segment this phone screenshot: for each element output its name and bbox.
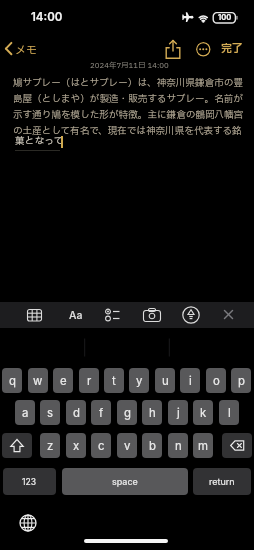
staticText: u [162, 374, 169, 388]
staticText: i [189, 374, 192, 388]
staticText: メモ [15, 42, 37, 59]
button[interactable]: e [53, 368, 73, 393]
staticText: y [136, 374, 143, 388]
staticText: Aa [69, 309, 83, 322]
staticText: x [73, 439, 80, 453]
button[interactable]: z [40, 433, 60, 458]
staticText: g [124, 406, 131, 420]
button[interactable]: メモ [2, 39, 44, 59]
button[interactable]: l [219, 400, 239, 425]
staticText: 14:00 [31, 10, 63, 24]
staticText: c [98, 439, 105, 453]
staticText: k [200, 406, 207, 420]
button[interactable] [25, 306, 44, 324]
button[interactable]: space [62, 468, 188, 495]
button[interactable]: f [91, 400, 111, 425]
button[interactable]: t [104, 368, 124, 393]
button[interactable]: w [28, 368, 48, 393]
button[interactable]: u [155, 368, 175, 393]
button[interactable]: k [193, 400, 213, 425]
staticText: t [112, 374, 116, 388]
button[interactable]: i [180, 368, 200, 393]
staticText: o [213, 374, 220, 388]
button[interactable]: a [15, 400, 35, 425]
button[interactable]: d [66, 400, 86, 425]
staticText: l [228, 406, 231, 420]
button[interactable]: s [40, 400, 60, 425]
button[interactable]: Aa [66, 305, 86, 325]
staticText: n [175, 439, 182, 453]
button[interactable] [196, 42, 211, 57]
staticText: 2024年7月11日 14:00 [90, 60, 169, 71]
staticText: return [209, 476, 235, 487]
button[interactable]: 完了 [219, 41, 245, 55]
staticText: j [177, 406, 180, 420]
staticText: r [87, 374, 92, 388]
button[interactable] [17, 512, 39, 534]
staticText: p [238, 374, 245, 388]
staticText: m [198, 439, 208, 453]
button[interactable]: p [231, 368, 251, 393]
button[interactable]: n [168, 433, 188, 458]
staticText: 完了 [221, 41, 243, 55]
button[interactable]: b [142, 433, 162, 458]
staticText: a [22, 406, 29, 420]
button[interactable]: return [193, 468, 251, 495]
staticText: d [73, 406, 80, 420]
button[interactable]: h [142, 400, 162, 425]
staticText: h [149, 406, 156, 420]
button[interactable]: m [193, 433, 213, 458]
button[interactable] [104, 306, 122, 324]
button[interactable] [222, 433, 252, 458]
staticText: w [33, 374, 43, 388]
button[interactable]: 123 [3, 468, 56, 495]
button[interactable] [2, 433, 32, 458]
button[interactable] [163, 39, 183, 60]
button[interactable]: y [129, 368, 149, 393]
staticText: b [149, 439, 156, 453]
staticText: v [124, 439, 131, 453]
staticText: f [99, 406, 104, 420]
button[interactable]: c [91, 433, 111, 458]
button[interactable]: x [66, 433, 86, 458]
button[interactable] [142, 306, 162, 324]
staticText: z [47, 439, 54, 453]
button[interactable]: v [117, 433, 137, 458]
button[interactable]: g [117, 400, 137, 425]
staticText: q [9, 374, 16, 388]
staticText: 100 [218, 13, 232, 22]
staticText: 123 [22, 477, 37, 487]
button[interactable]: o [206, 368, 226, 393]
button[interactable]: j [168, 400, 188, 425]
button[interactable]: q [2, 368, 22, 393]
button[interactable]: r [79, 368, 99, 393]
staticText: 鳩サブレー（はとサブレー）は、神奈川県鎌倉市の豊 島屋（としまや）が製造・販売す… [13, 76, 244, 138]
staticText: s [47, 406, 54, 420]
staticText: e [60, 374, 67, 388]
button[interactable] [181, 305, 201, 325]
staticText: 菓となって [15, 134, 64, 148]
staticText: space [112, 476, 138, 487]
button[interactable] [220, 306, 237, 323]
